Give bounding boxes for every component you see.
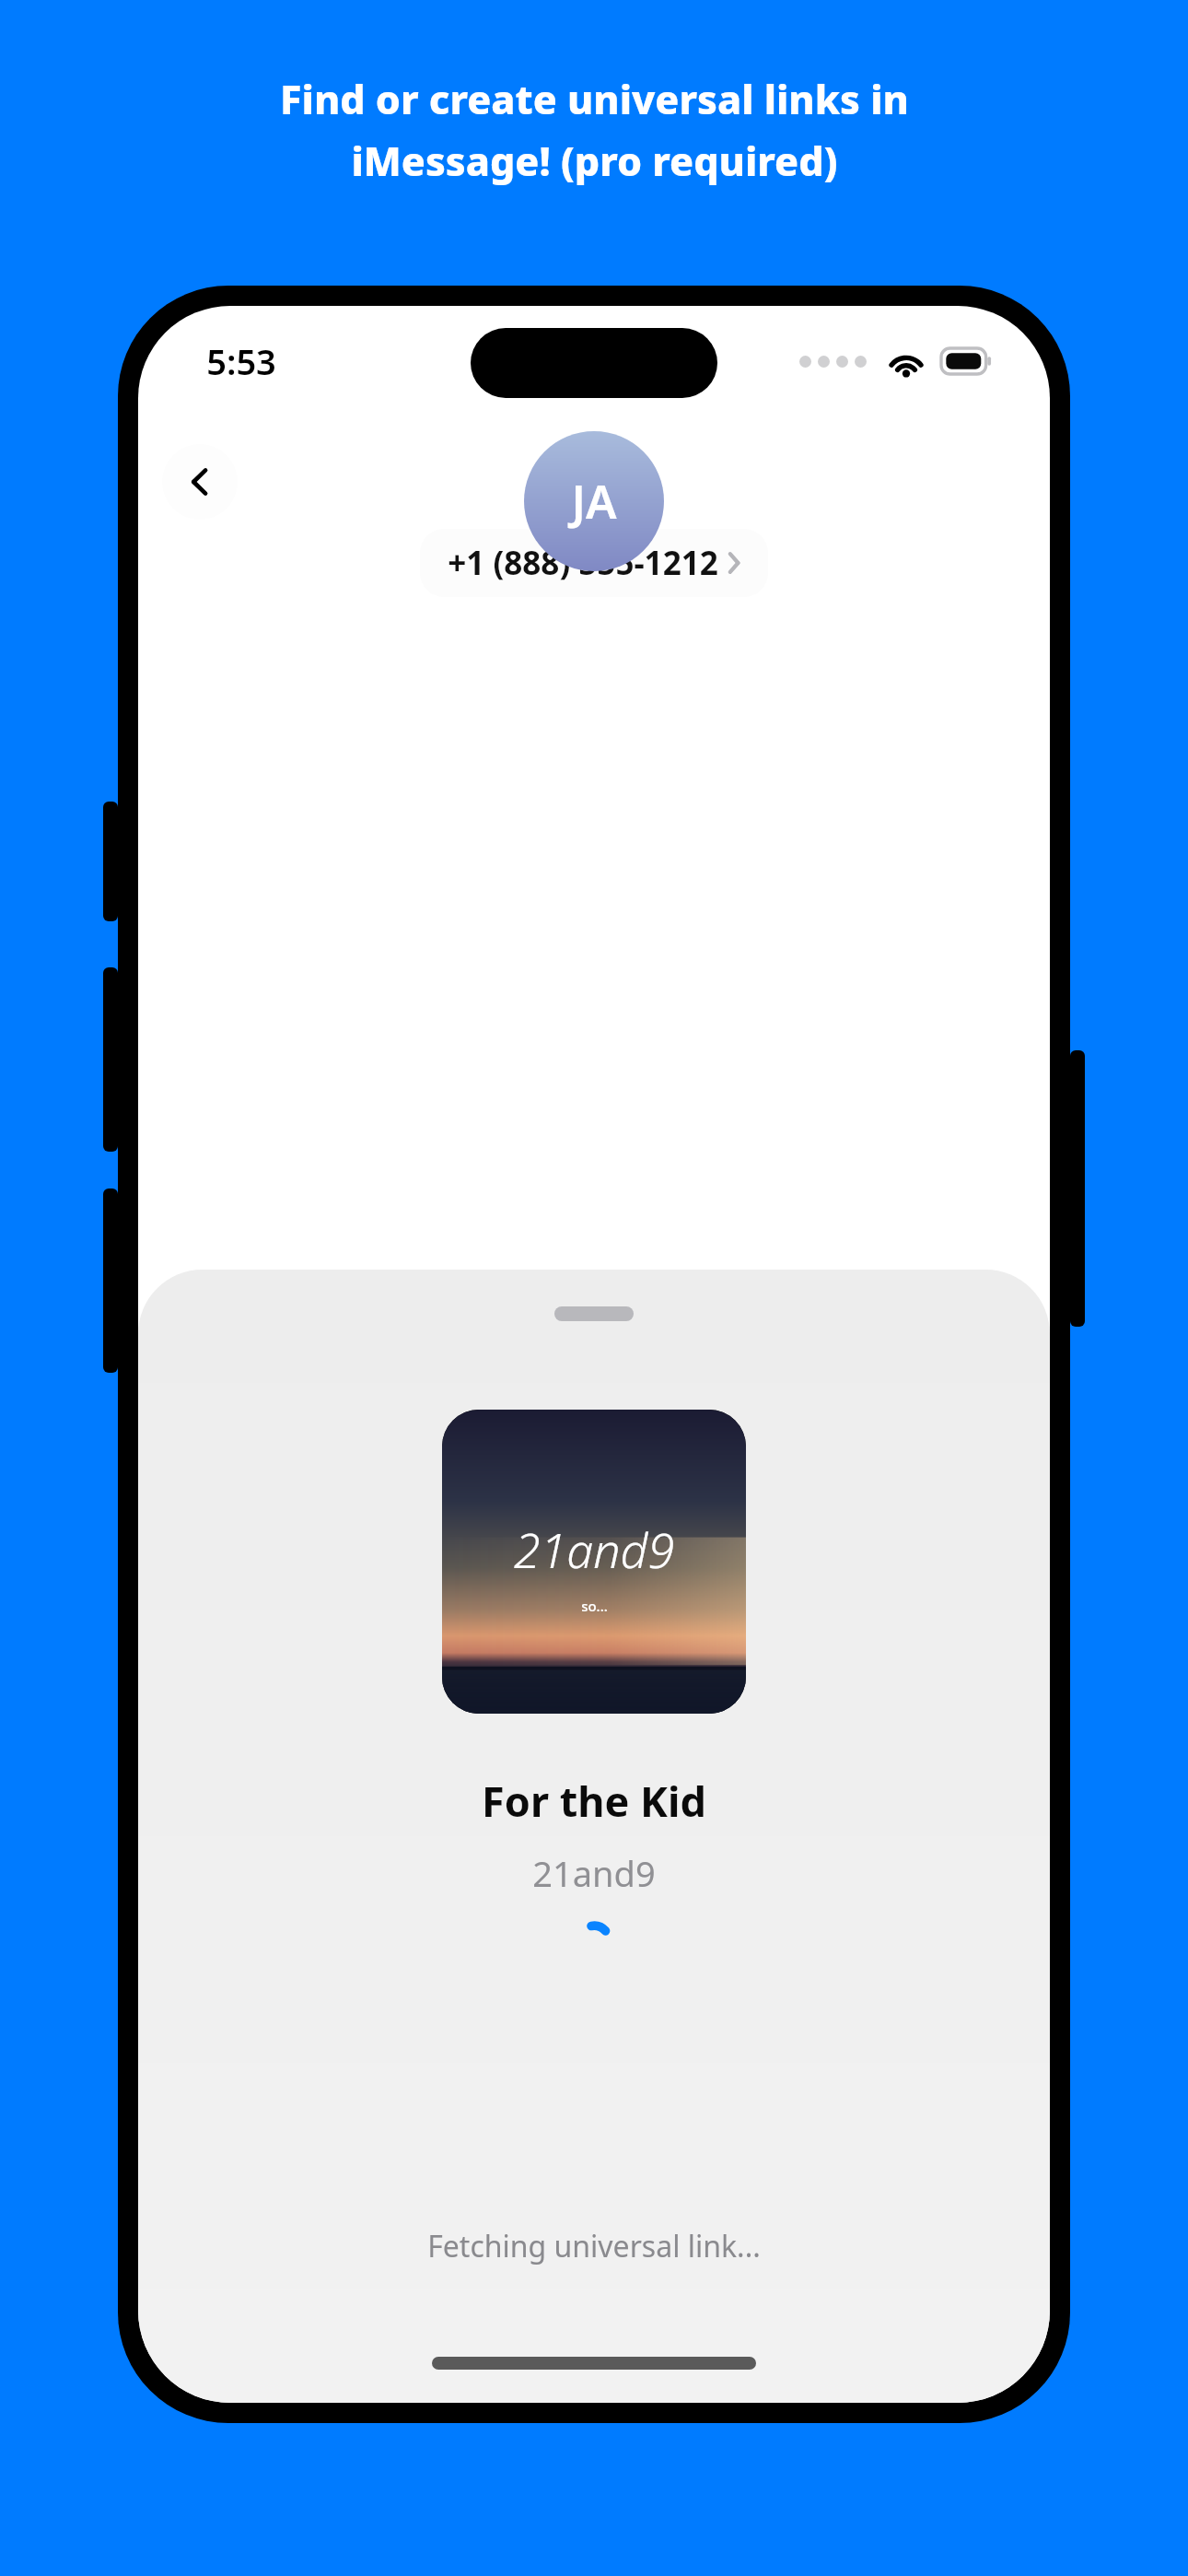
staticText: JA — [571, 470, 617, 533]
staticText: 5:53 — [206, 337, 276, 385]
staticText: +1 (888) 555-1212 — [448, 541, 718, 585]
staticText: iMessage — [297, 1395, 444, 1440]
staticText: 21and9 — [514, 1516, 674, 1582]
button[interactable]: +1 (888) 555-1212 — [420, 529, 768, 597]
staticText: 21and9 — [532, 1849, 656, 1897]
button[interactable]: Back — [162, 444, 238, 520]
staticText: For the Kid — [482, 1773, 706, 1829]
staticText: iMessage! (pro required) — [351, 134, 838, 188]
staticText: so... — [581, 1597, 608, 1615]
button[interactable]: Drag handle — [554, 1306, 634, 1321]
button[interactable]: 21and9 — [442, 1410, 746, 1714]
button[interactable]: iMessage — [265, 1375, 1022, 1459]
staticText: Find or create universal links in — [280, 72, 909, 126]
staticText: Fetching universal link... — [427, 2226, 761, 2266]
button[interactable]: Contact JA — [524, 431, 664, 571]
